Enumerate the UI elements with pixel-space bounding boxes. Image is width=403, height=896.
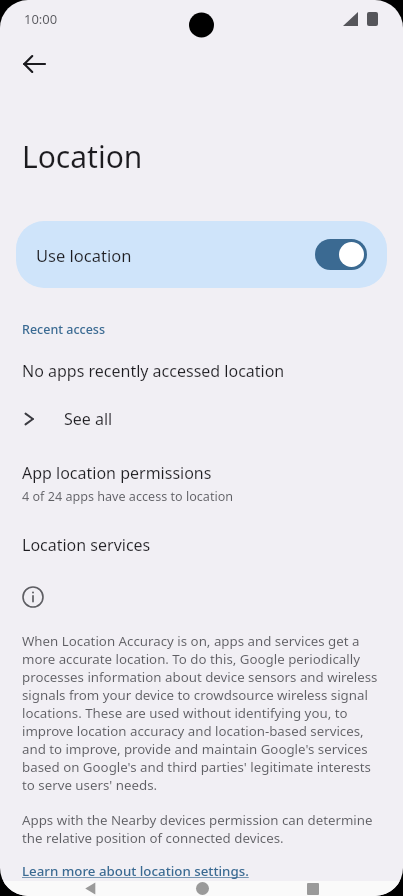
staticText: Learn more about location settings. — [22, 862, 249, 880]
staticText: Apps with the Nearby devices permission … — [22, 811, 385, 847]
button[interactable]: Back — [8, 38, 60, 90]
staticText: App location permissions — [22, 462, 212, 484]
staticText: Recent access — [22, 321, 106, 338]
button[interactable]: Location services — [0, 532, 403, 558]
staticText: 10:00 — [24, 10, 58, 28]
staticText: Location — [22, 136, 143, 177]
button[interactable]: App location permissions — [0, 460, 403, 507]
staticText: Use location — [36, 244, 132, 266]
staticText: When Location Accuracy is on, apps and s… — [22, 632, 385, 794]
staticText: No apps recently accessed location — [22, 360, 285, 382]
button[interactable]: Home — [180, 881, 224, 896]
button[interactable]: Learn more about location settings. — [0, 861, 267, 881]
button[interactable]: Use location — [16, 221, 387, 288]
staticText: 4 of 24 apps have access to location — [22, 488, 234, 505]
button[interactable]: See all — [0, 404, 403, 434]
staticText: See all — [64, 408, 113, 430]
staticText: Location services — [22, 534, 151, 556]
button[interactable]: Back — [68, 881, 112, 896]
button[interactable]: Recents — [291, 881, 335, 896]
